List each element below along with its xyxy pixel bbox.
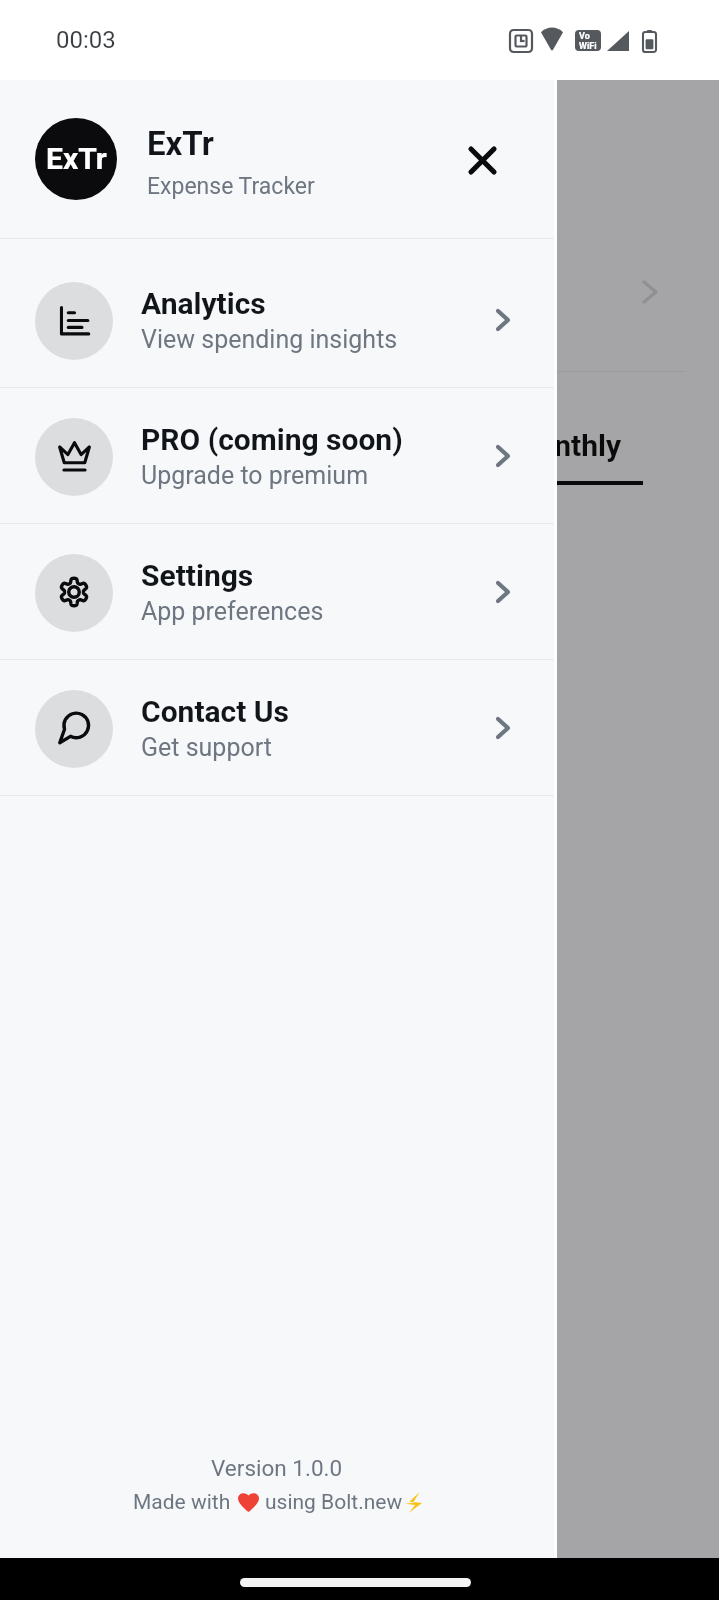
staticText: ExTr bbox=[46, 141, 107, 176]
staticText: Expense Tracker bbox=[147, 173, 315, 200]
staticText: PRO (coming soon) bbox=[141, 422, 403, 457]
staticText: Get support bbox=[141, 733, 272, 762]
staticText: App preferences bbox=[141, 597, 324, 626]
button[interactable]: Close navigation drawer bbox=[0, 80, 719, 1558]
staticText: Monthly bbox=[511, 428, 622, 463]
button[interactable]: Contact Us bbox=[0, 660, 554, 795]
button[interactable]: Close navigation drawer bbox=[451, 129, 511, 189]
staticText: Settings bbox=[141, 558, 254, 593]
staticText: Upgrade to premium bbox=[141, 461, 369, 490]
staticText: Version 1.0.0 bbox=[211, 1455, 343, 1481]
staticText: 00:03 bbox=[56, 26, 116, 54]
staticText: Contact Us bbox=[141, 694, 290, 729]
staticText: Vo WiFi bbox=[579, 31, 597, 51]
staticText: View spending insights bbox=[141, 325, 398, 354]
button[interactable]: PRO (coming soon) bbox=[0, 388, 554, 523]
staticText: using Bolt.new bbox=[265, 1490, 403, 1515]
staticText: ExTr bbox=[147, 124, 214, 163]
staticText: Analytics bbox=[141, 286, 266, 321]
button[interactable]: Settings bbox=[0, 524, 554, 659]
staticText: Made with bbox=[133, 1490, 231, 1515]
button[interactable]: Analytics bbox=[0, 252, 554, 387]
